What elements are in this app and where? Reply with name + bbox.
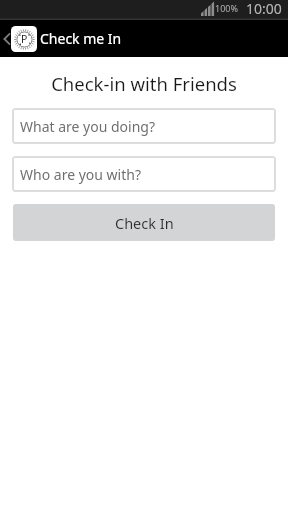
staticText: Check-in with Friends <box>0 71 288 96</box>
staticText: Check In <box>115 213 174 233</box>
staticText: 100% <box>215 2 238 14</box>
staticText: 10:00 <box>246 0 282 18</box>
staticText: Check me In <box>40 29 122 48</box>
button[interactable]: Check In <box>13 204 275 241</box>
staticText: P <box>21 32 28 46</box>
button[interactable]: Who are you with? <box>12 156 276 192</box>
staticText: What are you doing? <box>20 117 156 136</box>
staticText: Who are you with? <box>20 165 141 184</box>
button[interactable]: What are you doing? <box>12 108 276 144</box>
button[interactable]: Navigate up <box>0 20 37 57</box>
